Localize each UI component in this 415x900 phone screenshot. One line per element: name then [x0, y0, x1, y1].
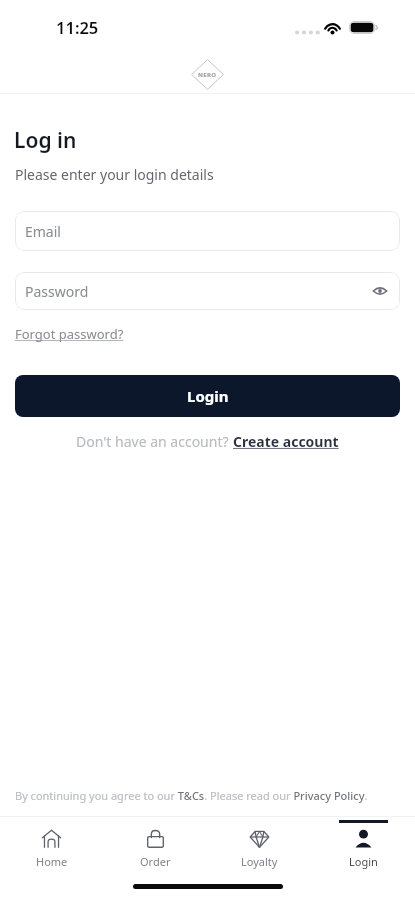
- staticText: By continuing you agree to our T&Cs. Ple…: [15, 788, 368, 803]
- staticText: Order: [140, 854, 171, 869]
- staticText: Home: [36, 854, 68, 869]
- staticText: Login: [349, 854, 378, 869]
- button[interactable]: Email: [15, 211, 400, 251]
- staticText: Login: [187, 386, 229, 406]
- staticText: NERO: [198, 71, 217, 79]
- button[interactable]: Create account: [233, 432, 339, 451]
- staticText: Email: [25, 222, 61, 241]
- button[interactable]: Order: [103, 816, 207, 874]
- button[interactable]: Login: [311, 816, 415, 874]
- button[interactable]: Login: [15, 375, 400, 417]
- button[interactable]: Password: [15, 272, 400, 310]
- button[interactable]: Forgot password?: [15, 325, 124, 343]
- staticText: Loyalty: [241, 854, 278, 869]
- button[interactable]: Home: [0, 816, 103, 874]
- staticText: Don't have an account?: [76, 432, 233, 451]
- staticText: 11:25: [56, 16, 99, 38]
- staticText: Please enter your login details: [15, 165, 214, 184]
- staticText: Log in: [14, 126, 77, 155]
- staticText: Password: [25, 282, 89, 301]
- button[interactable]: Loyalty: [207, 816, 311, 874]
- button[interactable]: Show password: [369, 280, 391, 302]
